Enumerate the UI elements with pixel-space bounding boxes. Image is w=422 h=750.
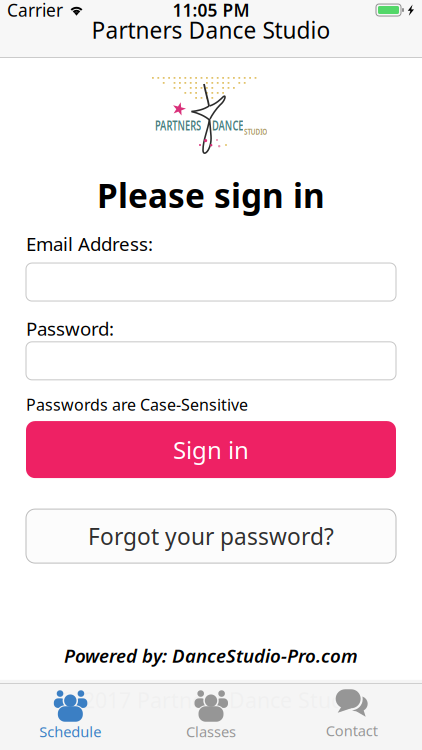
staticText: Contact: [326, 721, 378, 740]
button[interactable]: Schedule: [0, 680, 141, 750]
staticText: Please sign in: [97, 173, 325, 217]
button[interactable]: Contact: [281, 681, 422, 750]
staticText: Passwords are Case-Sensitive: [26, 394, 248, 415]
staticText: Forgot your password?: [88, 521, 334, 551]
button[interactable]: Forgot your password?: [26, 509, 396, 563]
staticText: 11:05 PM: [172, 0, 249, 21]
staticText: Classes: [186, 722, 236, 741]
button[interactable]: Sign in: [26, 421, 396, 478]
staticText: Password:: [26, 316, 114, 341]
staticText: © 2017 Partners Dance Studio: [59, 686, 363, 714]
staticText: STUDIO: [244, 125, 278, 137]
staticText: PARTNERS: [155, 115, 227, 134]
staticText: Sign in: [173, 434, 249, 466]
staticText: Schedule: [39, 722, 101, 741]
staticText: Email Address:: [26, 231, 153, 256]
staticText: Partners Dance Studio: [91, 15, 330, 45]
staticText: DANCE: [212, 115, 261, 134]
staticText: Carrier: [7, 0, 63, 21]
button[interactable]: Classes: [141, 680, 281, 750]
staticText: Powered by: DanceStudio-Pro.com: [64, 643, 358, 668]
